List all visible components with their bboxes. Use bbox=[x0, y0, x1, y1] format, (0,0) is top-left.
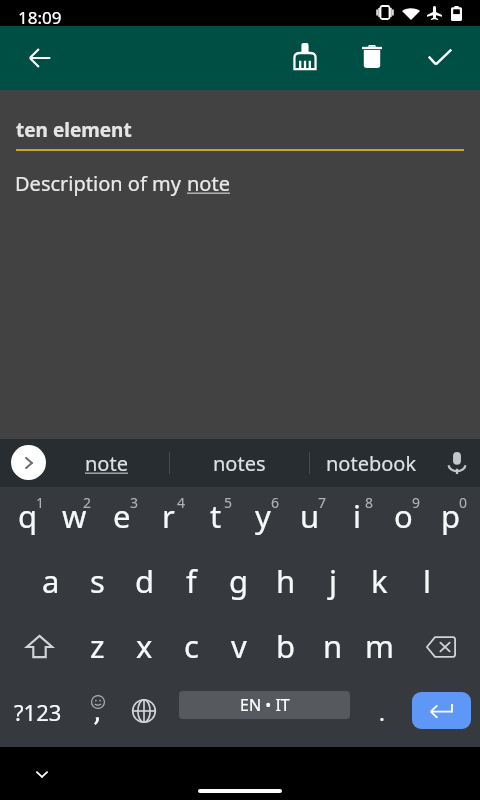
staticText: x bbox=[136, 625, 153, 667]
staticText: s bbox=[90, 560, 105, 602]
button[interactable]: ?123 bbox=[0, 682, 76, 747]
button[interactable]: More suggestions bbox=[11, 445, 46, 480]
button[interactable]: s bbox=[74, 552, 121, 617]
button[interactable]: Shift bbox=[3, 617, 74, 682]
staticText: u bbox=[300, 495, 320, 537]
staticText: c bbox=[184, 625, 199, 667]
button[interactable]: notebook bbox=[309, 439, 434, 487]
button[interactable]: Voice input bbox=[437, 443, 477, 483]
staticText: 3 bbox=[130, 493, 139, 512]
staticText: ?123 bbox=[14, 697, 62, 727]
button[interactable]: j bbox=[309, 552, 356, 617]
button[interactable]: g bbox=[215, 552, 262, 617]
staticText: 2 bbox=[83, 493, 92, 512]
staticText: i bbox=[353, 495, 361, 537]
staticText: notes bbox=[213, 450, 266, 477]
staticText: p bbox=[441, 495, 461, 537]
staticText: z bbox=[90, 625, 105, 667]
staticText: o bbox=[394, 495, 413, 537]
button[interactable]: h bbox=[262, 552, 309, 617]
staticText: e bbox=[113, 495, 131, 537]
button[interactable]: Backspace bbox=[403, 617, 474, 682]
staticText: ten element bbox=[16, 117, 132, 143]
button[interactable]: f bbox=[168, 552, 215, 617]
button[interactable]: i bbox=[332, 487, 379, 552]
staticText: m bbox=[365, 625, 394, 667]
button[interactable]: Delete bbox=[348, 32, 396, 80]
staticText: 1 bbox=[36, 493, 45, 512]
staticText: l bbox=[423, 560, 431, 602]
staticText: Description of my bbox=[15, 170, 187, 197]
button[interactable]: a bbox=[27, 552, 74, 617]
staticText: t bbox=[210, 495, 222, 537]
button[interactable]: y bbox=[238, 487, 285, 552]
button[interactable]: u bbox=[285, 487, 332, 552]
staticText: 8 bbox=[365, 493, 374, 512]
button[interactable]: x bbox=[121, 617, 168, 682]
staticText: notebook bbox=[326, 450, 417, 477]
staticText: 18:09 bbox=[18, 6, 62, 29]
button[interactable]: notes bbox=[169, 439, 309, 487]
staticText: 5 bbox=[224, 493, 233, 512]
button[interactable]: e bbox=[97, 487, 144, 552]
button[interactable]: r bbox=[144, 487, 191, 552]
staticText: . bbox=[379, 697, 385, 727]
button[interactable]: k bbox=[356, 552, 403, 617]
button[interactable]: p bbox=[426, 487, 473, 552]
button[interactable]: t bbox=[191, 487, 238, 552]
button[interactable]: b bbox=[262, 617, 309, 682]
button[interactable]: l bbox=[403, 552, 450, 617]
button[interactable]: z bbox=[74, 617, 121, 682]
staticText: note bbox=[187, 170, 230, 197]
staticText: 6 bbox=[271, 493, 280, 512]
staticText: b bbox=[276, 625, 296, 667]
button[interactable]: Clean bbox=[281, 32, 329, 80]
staticText: r bbox=[162, 495, 175, 537]
staticText: 0 bbox=[459, 493, 468, 512]
button[interactable]: n bbox=[309, 617, 356, 682]
button[interactable]: d bbox=[121, 552, 168, 617]
staticText: d bbox=[135, 560, 155, 602]
staticText: note bbox=[85, 450, 128, 477]
button[interactable]: w bbox=[50, 487, 97, 552]
button[interactable]: Back bbox=[16, 34, 64, 82]
button[interactable]: note bbox=[45, 439, 167, 487]
staticText: f bbox=[186, 560, 197, 602]
staticText: g bbox=[229, 560, 249, 602]
button[interactable]: Change language bbox=[116, 682, 172, 747]
staticText: k bbox=[371, 560, 388, 602]
staticText: j bbox=[329, 560, 337, 602]
button[interactable]: . bbox=[356, 682, 408, 747]
button[interactable]: q bbox=[3, 487, 50, 552]
button[interactable]: Enter bbox=[412, 692, 471, 729]
staticText: w bbox=[62, 495, 87, 537]
button[interactable] bbox=[76, 682, 116, 747]
button[interactable]: o bbox=[379, 487, 426, 552]
button[interactable]: Hide keyboard bbox=[23, 755, 61, 793]
button[interactable]: c bbox=[168, 617, 215, 682]
staticText: a bbox=[42, 560, 60, 602]
staticText: 7 bbox=[318, 493, 327, 512]
staticText: h bbox=[276, 560, 296, 602]
button[interactable]: m bbox=[356, 617, 403, 682]
staticText: 9 bbox=[412, 493, 421, 512]
button[interactable]: Save bbox=[416, 33, 464, 81]
button[interactable]: v bbox=[215, 617, 262, 682]
staticText: EN • IT bbox=[240, 694, 290, 716]
button[interactable]: EN • IT bbox=[179, 691, 350, 719]
staticText: 4 bbox=[177, 493, 186, 512]
staticText: q bbox=[18, 495, 38, 537]
staticText: v bbox=[231, 625, 247, 667]
staticText: n bbox=[323, 625, 343, 667]
staticText: y bbox=[255, 495, 271, 537]
